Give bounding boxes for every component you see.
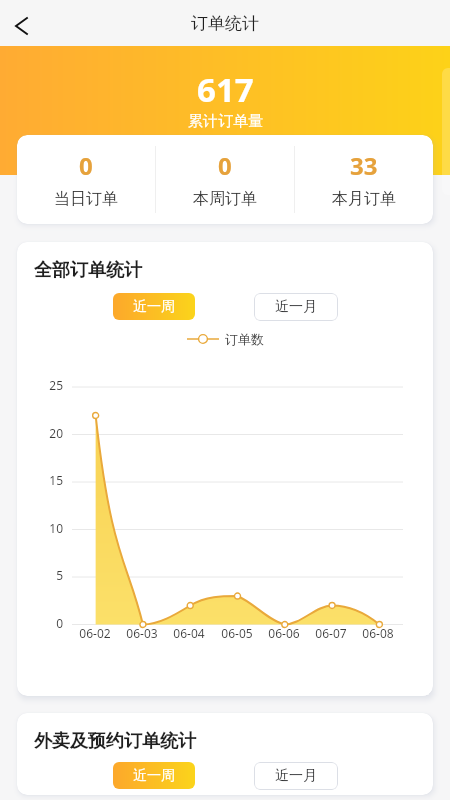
staticText: 06-05	[215, 625, 259, 641]
staticText: 近一周	[133, 298, 175, 316]
button[interactable]: 0	[17, 135, 155, 209]
staticText: 06-02	[73, 625, 117, 641]
staticText: 近一月	[275, 298, 317, 316]
staticText: 06-06	[262, 625, 306, 641]
staticText: 本月订单	[332, 189, 396, 209]
staticText: 617	[197, 67, 254, 112]
button[interactable]: 近一月	[254, 293, 338, 321]
staticText: 近一月	[275, 767, 317, 785]
button[interactable]: Back	[5, 8, 41, 44]
staticText: 33	[350, 149, 378, 182]
staticText: 本周订单	[193, 189, 257, 209]
staticText: 0	[79, 149, 93, 182]
staticText: 0	[27, 615, 63, 631]
staticText: 累计订单量	[188, 112, 263, 131]
staticText: 0	[218, 149, 232, 182]
staticText: 06-08	[356, 625, 400, 641]
staticText: 全部订单统计	[34, 259, 142, 282]
button[interactable]: 0	[156, 135, 294, 209]
button[interactable]: 近一周	[113, 762, 195, 789]
staticText: 10	[27, 520, 63, 536]
button[interactable]: 近一月	[254, 762, 338, 790]
button[interactable]: More	[442, 68, 450, 195]
staticText: 5	[27, 567, 63, 583]
staticText: 近一周	[133, 767, 175, 785]
staticText: 06-07	[309, 625, 353, 641]
staticText: 15	[27, 472, 63, 488]
staticText: 当日订单	[54, 189, 118, 209]
staticText: 外卖及预约订单统计	[34, 730, 196, 753]
staticText: 25	[27, 377, 63, 393]
staticText: 06-04	[167, 625, 211, 641]
staticText: 06-03	[120, 625, 164, 641]
button[interactable]: 近一周	[113, 293, 195, 320]
staticText: 20	[27, 425, 63, 441]
staticText: 订单统计	[191, 13, 259, 34]
staticText: 订单数	[225, 331, 264, 347]
button[interactable]: 33	[295, 135, 433, 209]
